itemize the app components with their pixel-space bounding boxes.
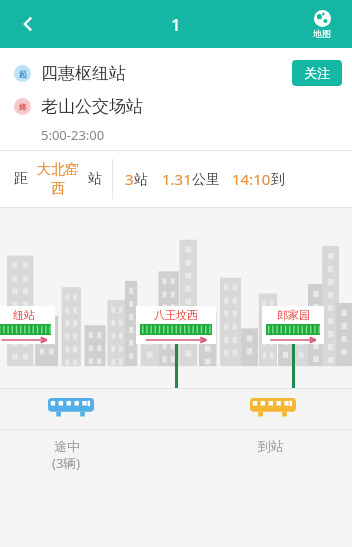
staticText: 大北窑西 bbox=[35, 161, 81, 197]
staticText: 到站 bbox=[258, 438, 284, 454]
button[interactable]: Back bbox=[6, 2, 50, 46]
staticText: (3辆) bbox=[52, 454, 81, 472]
staticText: 3 bbox=[125, 169, 134, 189]
staticText: 5:00-23:00 bbox=[41, 126, 105, 144]
button[interactable]: Map bbox=[302, 10, 342, 39]
staticText: 终 bbox=[19, 102, 27, 112]
staticText: 公里 bbox=[192, 171, 220, 189]
staticText: 地图 bbox=[313, 28, 331, 39]
button[interactable]: 关注 bbox=[292, 60, 342, 86]
staticText: 站 bbox=[134, 171, 148, 189]
staticText: 四惠枢纽站 bbox=[41, 63, 126, 84]
staticText: 八王坟西 bbox=[154, 308, 198, 322]
staticText: 1.31 bbox=[162, 169, 192, 189]
staticText: 郎家园 bbox=[277, 308, 310, 322]
staticText: 1 bbox=[171, 13, 181, 36]
staticText: 老山公交场站 bbox=[41, 96, 143, 117]
staticText: 站 bbox=[88, 170, 102, 188]
staticText: 到 bbox=[271, 171, 285, 189]
staticText: 途中 bbox=[54, 438, 80, 454]
staticText: 距 bbox=[14, 170, 28, 188]
staticText: 14:10 bbox=[232, 169, 271, 189]
staticText: 起 bbox=[19, 69, 27, 79]
staticText: 关注 bbox=[304, 65, 330, 81]
staticText: 纽站 bbox=[13, 308, 35, 322]
